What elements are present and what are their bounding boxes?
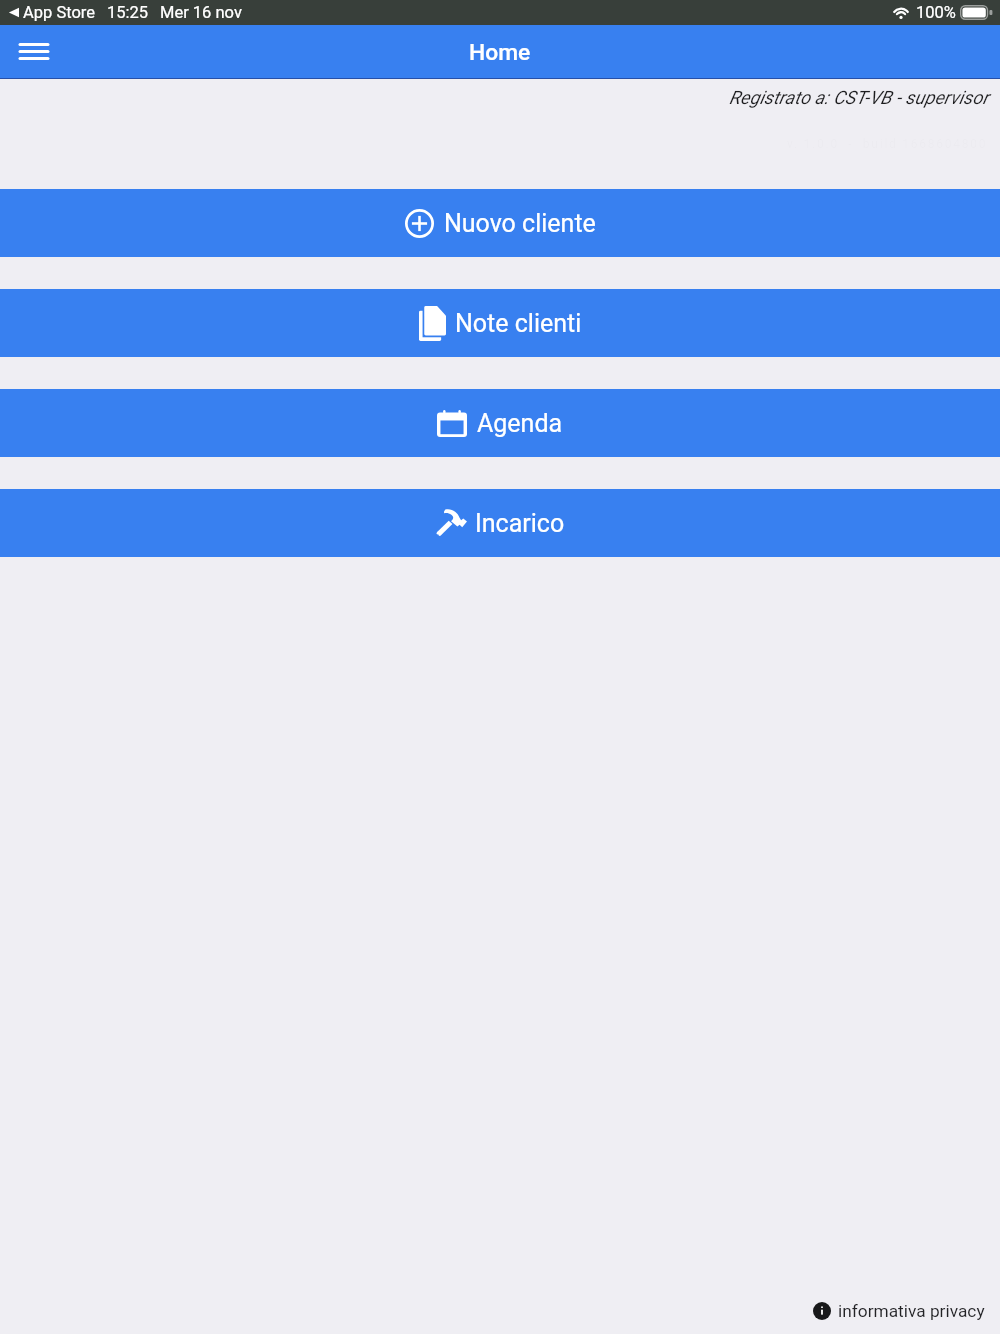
staticText: Nuovo cliente xyxy=(444,209,596,238)
staticText: 100% xyxy=(916,3,956,22)
button[interactable]: Open navigation menu xyxy=(13,30,55,72)
staticText: App Store xyxy=(23,3,96,22)
staticText: Mer 16 nov xyxy=(160,3,242,22)
staticText: Home xyxy=(469,39,531,66)
staticText: Note clienti xyxy=(455,309,582,338)
button[interactable]: Incarico xyxy=(0,489,1000,557)
staticText: informativa privacy xyxy=(838,1301,985,1321)
button[interactable]: Note clienti xyxy=(0,289,1000,357)
staticText: Registrato a: CST-VB - supervisor xyxy=(729,87,989,109)
button[interactable]: Nuovo cliente xyxy=(0,189,1000,257)
staticText: Incarico xyxy=(475,509,565,538)
button[interactable]: Agenda xyxy=(0,389,1000,457)
button[interactable]: informativa privacy xyxy=(813,1301,985,1321)
staticText: Agenda xyxy=(477,409,563,438)
staticText: 15:25 xyxy=(107,3,149,22)
